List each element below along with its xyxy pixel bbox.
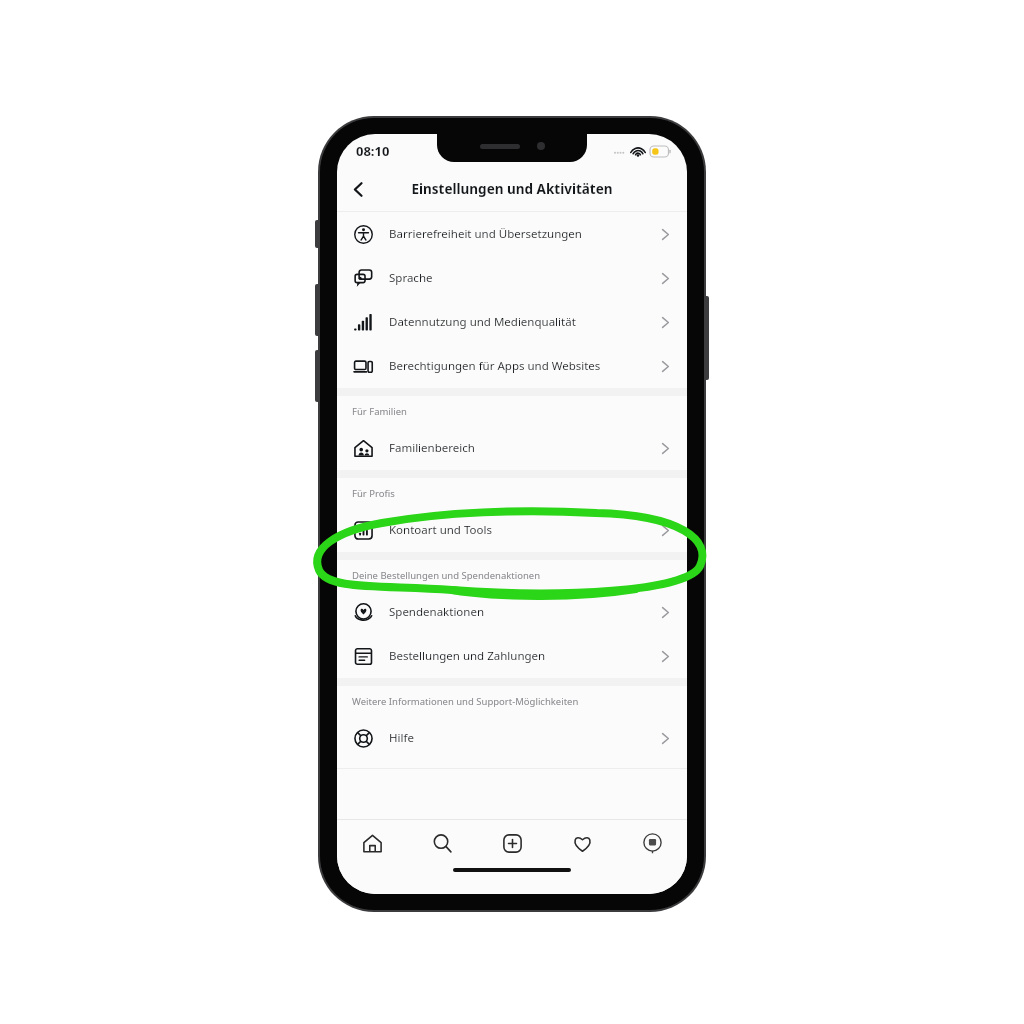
staticText: Bestellungen und Zahlungen [389, 648, 661, 664]
staticText: 08:10 [356, 142, 390, 160]
button[interactable]: Bestellungen und Zahlungen [337, 634, 687, 678]
button[interactable]: Sprache [337, 256, 687, 300]
button[interactable]: Suche [407, 820, 477, 866]
button[interactable]: Aktivität [547, 820, 617, 866]
staticText: Einstellungen und Aktivitäten [411, 180, 613, 198]
staticText: Für Profis [352, 487, 395, 500]
staticText: Datennutzung und Medienqualität [389, 314, 661, 330]
button[interactable]: Datennutzung und Medienqualität [337, 300, 687, 344]
button[interactable]: Spendenaktionen [337, 590, 687, 634]
staticText: Deine Bestellungen und Spendenaktionen [352, 569, 541, 582]
button[interactable]: Startseite [337, 820, 407, 866]
staticText: Barrierefreiheit und Übersetzungen [389, 226, 661, 242]
staticText: Hilfe [389, 730, 661, 746]
staticText: Für Familien [352, 405, 407, 418]
staticText: Spendenaktionen [389, 604, 661, 620]
button[interactable]: Hilfe [337, 716, 687, 760]
staticText: Kontoart und Tools [389, 522, 661, 538]
button[interactable]: Zurück [337, 168, 379, 210]
button[interactable]: Barrierefreiheit und Übersetzungen [337, 212, 687, 256]
staticText: Weitere Informationen und Support-Möglic… [352, 695, 579, 708]
button[interactable]: Berechtigungen für Apps und Websites [337, 344, 687, 388]
staticText: Sprache [389, 270, 661, 286]
button[interactable]: Erstellen [477, 820, 547, 866]
staticText: Berechtigungen für Apps und Websites [389, 358, 661, 374]
button[interactable]: Profil [617, 820, 687, 866]
button[interactable]: Kontoart und Tools [337, 508, 687, 552]
staticText: Familienbereich [389, 440, 661, 456]
button[interactable]: Familienbereich [337, 426, 687, 470]
